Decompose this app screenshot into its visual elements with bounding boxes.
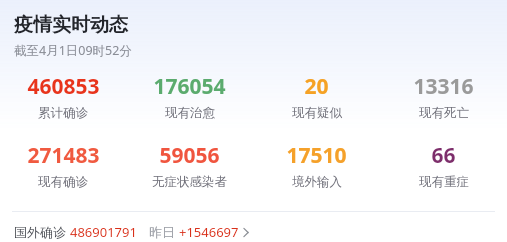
staticText: 176054 bbox=[153, 72, 226, 101]
staticText: 66 bbox=[431, 141, 456, 170]
staticText: 271483 bbox=[27, 141, 100, 170]
button[interactable]: 176054 bbox=[126, 72, 253, 121]
button[interactable]: 460853 bbox=[0, 72, 126, 121]
button[interactable]: 国外确诊 bbox=[0, 223, 507, 241]
staticText: 460853 bbox=[27, 72, 100, 101]
staticText: 13316 bbox=[413, 72, 474, 101]
staticText: +1546697 bbox=[179, 223, 239, 241]
staticText: 现有治愈 bbox=[165, 105, 215, 121]
button[interactable]: 17510 bbox=[253, 141, 380, 190]
staticText: 国外确诊 bbox=[14, 224, 66, 240]
staticText: 疫情实时动态 bbox=[14, 13, 128, 37]
staticText: 17510 bbox=[286, 141, 347, 170]
staticText: 境外输入 bbox=[292, 174, 342, 190]
staticText: 现有重症 bbox=[419, 174, 469, 190]
staticText: 现有死亡 bbox=[419, 105, 469, 121]
button[interactable]: 66 bbox=[380, 141, 507, 190]
other: 更多 bbox=[243, 227, 249, 238]
button[interactable]: 59056 bbox=[126, 141, 253, 190]
button[interactable]: 271483 bbox=[0, 141, 126, 190]
staticText: 累计确诊 bbox=[38, 105, 88, 121]
staticText: 截至4月1日09时52分 bbox=[14, 42, 132, 59]
staticText: 昨日 bbox=[149, 224, 175, 240]
staticText: 无症状感染者 bbox=[152, 174, 227, 190]
staticText: 现有疑似 bbox=[292, 105, 342, 121]
staticText: 486901791 bbox=[70, 223, 137, 241]
button[interactable]: 13316 bbox=[380, 72, 507, 121]
staticText: 20 bbox=[304, 72, 329, 101]
staticText: 59056 bbox=[159, 141, 220, 170]
button[interactable]: 20 bbox=[253, 72, 380, 121]
staticText: 现有确诊 bbox=[38, 174, 88, 190]
